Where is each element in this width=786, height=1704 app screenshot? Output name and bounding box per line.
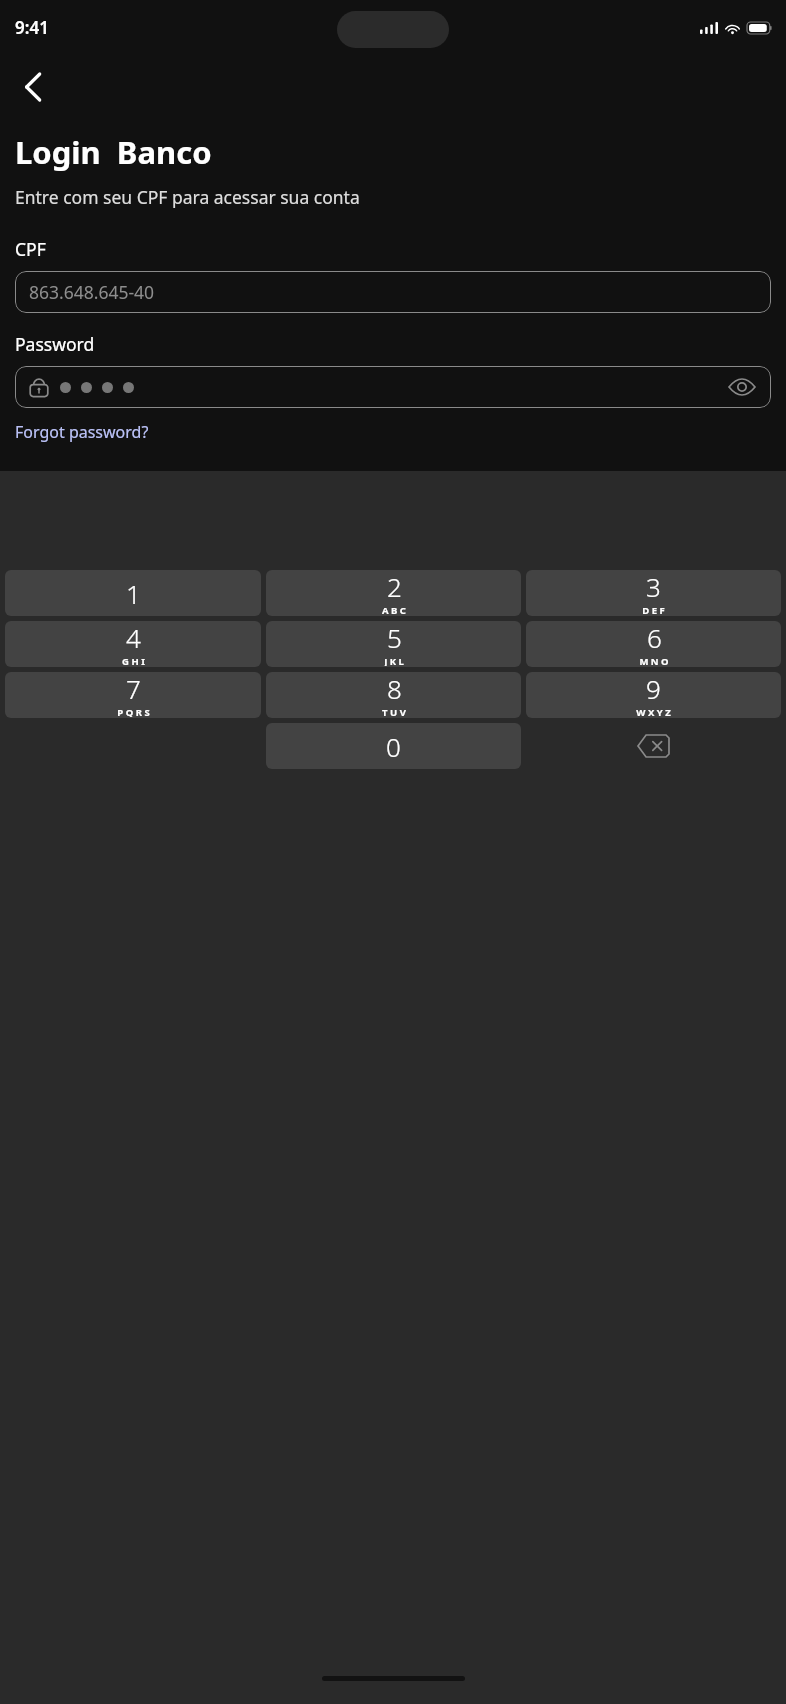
staticText: Forgot password? — [15, 421, 149, 443]
button[interactable]: Back — [9, 63, 57, 111]
button[interactable]: Forgot password? — [15, 418, 149, 446]
staticText: 7 — [126, 672, 141, 706]
staticText: W X Y Z — [636, 706, 671, 717]
button[interactable]: 1 — [5, 570, 261, 616]
button[interactable]: 863.648.645-40 — [15, 271, 771, 313]
staticText: 9:41 — [15, 16, 49, 39]
staticText: Login Banco — [15, 131, 212, 173]
staticText: 5 — [387, 621, 402, 655]
button[interactable]: Show password — [15, 366, 771, 408]
staticText: 1 — [126, 576, 141, 611]
staticText: J K L — [384, 655, 404, 666]
staticText: Entre com seu CPF para acessar sua conta — [15, 185, 360, 209]
staticText: G H I — [122, 655, 145, 666]
staticText: CPF — [15, 237, 46, 261]
staticText: 2 — [387, 570, 402, 604]
button[interactable]: 9 — [526, 672, 781, 718]
staticText: 9 — [646, 672, 661, 706]
button[interactable]: 6 — [526, 621, 781, 667]
staticText: A B C — [382, 604, 406, 615]
staticText: 3 — [646, 570, 661, 604]
staticText: 6 — [647, 621, 662, 655]
staticText: D E F — [642, 604, 665, 615]
staticText: 863.648.645-40 — [29, 280, 155, 304]
staticText: T U V — [382, 706, 406, 717]
button[interactable]: 0 — [266, 723, 521, 769]
button[interactable]: 2 — [266, 570, 521, 616]
button[interactable]: 3 — [526, 570, 781, 616]
button[interactable]: 4 — [5, 621, 261, 667]
button[interactable]: 7 — [5, 672, 261, 718]
staticText: 0 — [386, 729, 401, 764]
button[interactable]: 8 — [266, 672, 521, 718]
staticText: 4 — [126, 621, 141, 655]
button[interactable]: Show password — [727, 372, 757, 402]
staticText: Password — [15, 332, 95, 356]
staticText: M N O — [639, 655, 669, 666]
staticText: 8 — [387, 672, 402, 706]
staticText: P Q R S — [117, 706, 150, 717]
button[interactable]: Backspace — [526, 723, 781, 769]
button[interactable]: 5 — [266, 621, 521, 667]
